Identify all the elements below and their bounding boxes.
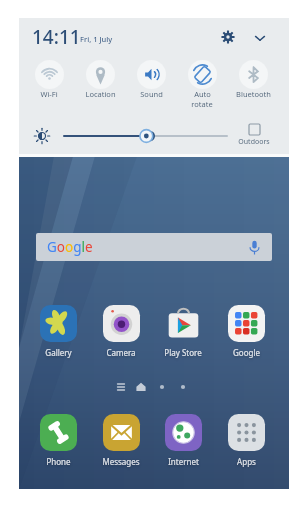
staticText: Messages [102, 456, 140, 467]
staticText: Play Store [164, 347, 202, 358]
button[interactable] [59, 124, 234, 148]
staticText: Phone [46, 456, 71, 467]
staticText: Outdoors [238, 137, 270, 147]
staticText: Location [85, 89, 116, 99]
button[interactable]: Apps [215, 414, 277, 467]
button[interactable]: Location [75, 60, 125, 99]
button[interactable]: Voice search [249, 240, 260, 255]
button[interactable]: Play Store [152, 305, 214, 358]
button[interactable]: Expand [252, 30, 268, 46]
button[interactable]: Gallery [27, 305, 89, 358]
staticText: Wi-Fi [40, 89, 58, 99]
staticText: Internet [168, 456, 199, 467]
button[interactable]: Google [36, 233, 272, 261]
button[interactable]: Auto [177, 60, 227, 109]
staticText: Fri, 1 July [80, 34, 113, 44]
button[interactable]: Settings [221, 30, 235, 44]
button[interactable]: Phone [27, 414, 89, 467]
staticText: Sound [140, 89, 163, 99]
staticText: Camera [106, 347, 136, 358]
button[interactable]: Google [215, 305, 277, 358]
button[interactable]: Sound [126, 60, 176, 99]
button[interactable]: Internet [152, 414, 214, 467]
button[interactable]: Wi-Fi [24, 60, 74, 99]
staticText: rotate [191, 99, 213, 109]
staticText: Google [233, 347, 260, 358]
staticText: 14:11 [32, 24, 81, 50]
staticText: Bluetooth [236, 89, 271, 99]
staticText: Gallery [45, 347, 72, 358]
staticText: Apps [237, 456, 256, 467]
staticText: Google [47, 238, 93, 256]
button[interactable]: Camera [90, 305, 152, 358]
button[interactable]: Messages [90, 414, 152, 467]
staticText: Auto [194, 89, 211, 99]
button[interactable]: Bluetooth [228, 60, 278, 99]
button[interactable]: Outdoors [238, 124, 270, 147]
